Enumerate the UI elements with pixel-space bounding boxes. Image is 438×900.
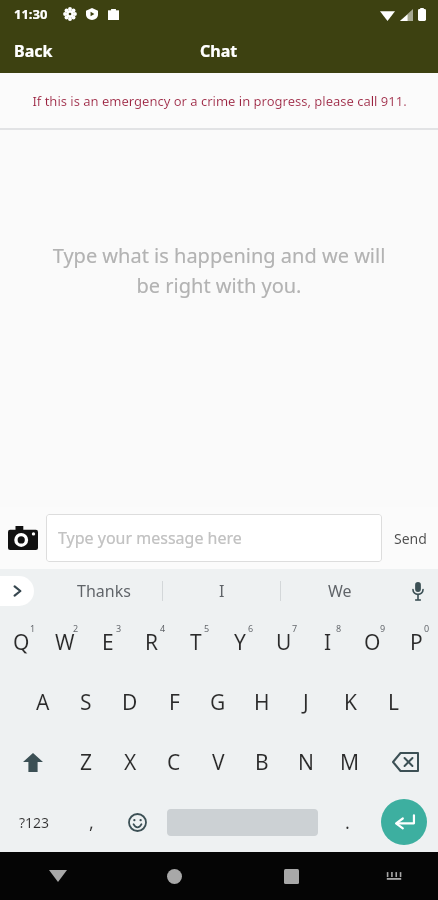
staticText: Y [234,628,246,657]
button[interactable]: . [324,792,370,852]
staticText: X [124,748,137,777]
staticText: N [298,748,314,777]
button[interactable]: G [196,672,240,732]
staticText: Type what is happening and we will be ri… [44,242,394,299]
button[interactable]: Q [0,613,43,672]
staticText: Chat [200,40,238,62]
button[interactable]: B [240,732,284,792]
button[interactable]: E [86,613,130,672]
staticText: M [340,748,360,777]
staticText: Back [14,40,53,62]
staticText: Z [80,748,93,777]
button[interactable]: H [240,672,284,732]
button[interactable]: Thanks [46,569,162,613]
button[interactable]: K [328,672,372,732]
staticText: U [276,628,292,657]
staticText: A [36,688,50,717]
button[interactable]: U [262,613,306,672]
staticText: 4 [160,622,166,634]
button[interactable]: Emoji [114,792,160,852]
staticText: R [145,628,159,657]
staticText: 3 [116,622,122,634]
staticText: , [89,810,94,835]
staticText: B [255,748,269,777]
button[interactable]: Send [382,507,438,569]
button[interactable]: , [68,792,114,852]
staticText: ?123 [19,813,50,832]
button[interactable]: X [108,732,152,792]
button[interactable]: R [130,613,174,672]
button[interactable]: A [21,672,64,732]
staticText: If this is an emergency or a crime in pr… [32,92,407,110]
button[interactable]: Y [218,613,262,672]
button[interactable]: Recents [233,852,350,900]
staticText: F [169,688,180,717]
staticText: Type your message here [58,527,242,549]
staticText: 9 [380,622,386,634]
button[interactable]: S [64,672,108,732]
button[interactable]: D [108,672,152,732]
staticText: S [80,688,92,717]
button[interactable]: T [174,613,218,672]
button[interactable]: F [152,672,196,732]
staticText: 8 [336,622,342,634]
staticText: C [167,748,181,777]
staticText: . [345,810,350,835]
button[interactable]: Backspace [372,732,438,792]
button[interactable]: Back [0,28,67,73]
staticText: We [328,580,352,602]
staticText: Thanks [77,580,131,602]
staticText: K [344,688,357,717]
button[interactable]: Enter [370,792,438,852]
staticText: W [55,628,75,657]
staticText: D [122,688,138,717]
staticText: 2 [73,622,79,634]
button[interactable]: Z [65,732,108,792]
button[interactable]: W [43,613,86,672]
button[interactable]: Home [116,852,233,900]
button[interactable]: I [163,569,280,613]
staticText: G [210,688,226,717]
staticText: 7 [292,622,298,634]
staticText: I [219,580,225,602]
button[interactable]: We [281,569,398,613]
button[interactable]: Expand toolbar [0,576,34,606]
button[interactable]: L [372,672,416,732]
staticText: 11:30 [14,5,48,23]
staticText: P [410,628,423,657]
button[interactable]: J [284,672,328,732]
button[interactable]: Voice input [398,569,438,613]
button[interactable]: P [394,613,438,672]
button[interactable]: Hide keyboard [0,852,116,900]
button[interactable]: Camera [0,515,46,561]
staticText: E [102,628,114,657]
button[interactable]: C [152,732,196,792]
staticText: V [212,748,225,777]
button[interactable]: Switch keyboard [350,852,438,900]
button[interactable]: N [284,732,328,792]
staticText: J [303,688,309,717]
staticText: 5 [204,622,210,634]
staticText: 6 [248,622,254,634]
staticText: O [364,628,381,657]
staticText: L [388,688,400,717]
staticText: Send [394,529,427,548]
staticText: H [254,688,270,717]
button[interactable]: I [306,613,350,672]
button[interactable]: ?123 [0,792,68,852]
button[interactable]: M [328,732,372,792]
staticText: 1 [30,622,36,634]
staticText: T [190,628,202,657]
button[interactable]: V [196,732,240,792]
button[interactable]: Space [160,792,324,852]
staticText: 0 [424,622,430,634]
button[interactable]: Shift [0,732,65,792]
button[interactable]: O [350,613,394,672]
staticText: I [324,628,332,657]
staticText: Q [13,628,30,657]
button[interactable]: Type your message here [46,514,382,562]
